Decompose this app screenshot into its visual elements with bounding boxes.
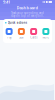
staticText: 9:41 (3, 0, 10, 5)
staticText: Quick actions (8, 21, 27, 24)
staticText: Dashboard (16, 5, 38, 10)
staticText: Cards (30, 36, 37, 39)
staticText: Scan (19, 36, 24, 39)
button[interactable]: Pay (3, 28, 15, 39)
staticText: stay on top of every bill. (11, 14, 44, 17)
staticText: More (42, 36, 49, 39)
staticText: Pay (7, 36, 11, 39)
button[interactable]: Scan (15, 28, 27, 39)
button[interactable]: Cards (27, 28, 40, 39)
staticText: Track your spending and (11, 11, 44, 15)
button[interactable]: More (40, 28, 52, 39)
